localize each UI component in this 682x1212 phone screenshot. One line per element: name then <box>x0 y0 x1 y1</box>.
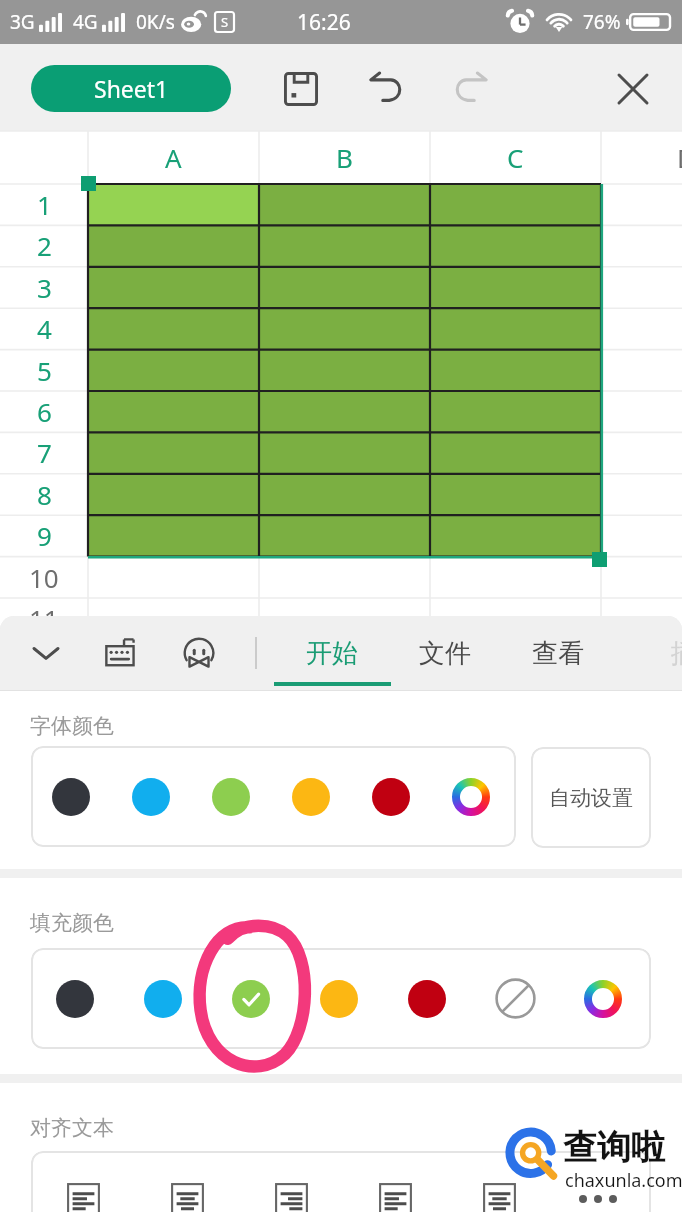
staticText: 6 <box>37 394 52 429</box>
staticText: 查看 <box>532 637 584 670</box>
button[interactable]: 插入 <box>640 616 682 690</box>
button[interactable]: Text alignment option <box>239 1180 343 1212</box>
staticText: 查询啦 <box>563 1126 665 1169</box>
button[interactable]: 自动设置 <box>531 747 651 848</box>
button[interactable]: Fill colour option <box>207 948 295 1049</box>
staticText: 3G <box>10 9 35 35</box>
staticText: 开始 <box>306 637 358 670</box>
button[interactable]: Save <box>274 62 328 116</box>
staticText: 自动设置 <box>549 785 633 811</box>
staticText: 0K/s <box>136 9 175 35</box>
button[interactable]: Collapse toolbar <box>18 625 74 681</box>
staticText: chaxunla.com <box>565 1168 682 1193</box>
staticText: 4G <box>73 9 98 35</box>
staticText: 8 <box>37 477 52 512</box>
button[interactable]: Fill colour option <box>559 948 647 1049</box>
staticText: 11 <box>29 601 59 636</box>
button[interactable]: Fill colour option <box>471 948 559 1049</box>
button[interactable]: Color <box>31 746 111 847</box>
staticText: 5 <box>37 353 52 388</box>
button[interactable]: Assistant <box>171 625 227 681</box>
staticText: 插入 <box>671 637 682 670</box>
button[interactable]: Fill colour option <box>31 948 119 1049</box>
button[interactable]: Keyboard <box>94 625 150 681</box>
button[interactable]: Fill colour option <box>295 948 383 1049</box>
staticText: 3 <box>37 270 52 305</box>
button[interactable]: Text alignment option <box>343 1180 447 1212</box>
button[interactable]: Sheet1 <box>31 65 231 112</box>
staticText: 1 <box>37 187 52 222</box>
staticText: 9 <box>37 518 52 553</box>
button[interactable]: Color <box>111 746 191 847</box>
staticText: 填充颜色 <box>30 910 114 936</box>
staticText: 7 <box>37 435 52 470</box>
button[interactable]: More colors <box>431 746 511 847</box>
button[interactable]: Text alignment option <box>135 1180 239 1212</box>
button[interactable]: 查看 <box>501 616 614 690</box>
staticText: S <box>221 13 229 31</box>
button[interactable]: 文件 <box>388 616 501 690</box>
staticText: 76% <box>583 9 621 35</box>
button[interactable]: Undo <box>359 62 413 116</box>
staticText: 16:26 <box>297 8 351 37</box>
staticText: Sheet1 <box>94 73 169 104</box>
button[interactable]: 开始 <box>275 616 388 690</box>
button[interactable]: Redo <box>444 62 498 116</box>
staticText: 文件 <box>419 637 471 670</box>
button[interactable]: Text alignment option <box>31 1180 135 1212</box>
staticText: C <box>507 140 524 175</box>
staticText: A <box>165 140 182 175</box>
staticText: 字体颜色 <box>30 713 114 739</box>
button[interactable]: Color <box>191 746 271 847</box>
button[interactable]: Text alignment option <box>447 1180 551 1212</box>
button[interactable]: Color <box>351 746 431 847</box>
button[interactable]: Fill colour option <box>383 948 471 1049</box>
staticText: 对齐文本 <box>30 1115 114 1141</box>
staticText: 2 <box>37 228 52 263</box>
button[interactable]: Close <box>606 62 660 116</box>
staticText: 4 <box>37 311 52 346</box>
button[interactable]: Color <box>271 746 351 847</box>
staticText: B <box>336 140 353 175</box>
staticText: D <box>677 140 682 175</box>
staticText: 10 <box>29 560 59 595</box>
button[interactable]: Fill colour option <box>119 948 207 1049</box>
